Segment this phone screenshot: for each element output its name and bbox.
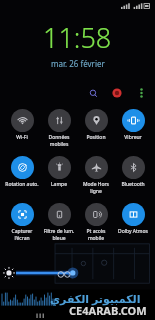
button[interactable]: Pt accès mobile: [78, 202, 114, 242]
staticText: Bluetooth: [115, 181, 151, 188]
button[interactable]: Dolby Atmos: [115, 202, 151, 236]
button[interactable]: Bluetooth: [115, 155, 151, 189]
button[interactable]: Lampe: [41, 155, 77, 189]
button[interactable]: Données mobiles: [41, 108, 77, 148]
button[interactable]: Position: [78, 108, 114, 142]
button[interactable]: Rotation auto.: [4, 155, 40, 189]
staticText: Vibreur: [115, 134, 151, 141]
staticText: Lampe: [41, 181, 77, 188]
button[interactable]: Mode Hors ligne: [78, 155, 114, 195]
staticText: Pt accès mobile: [78, 228, 114, 241]
staticText: Mode Hors ligne: [78, 181, 114, 194]
staticText: Capturer l'écran: [4, 228, 40, 241]
staticText: Filtre de lum. bleue: [41, 228, 77, 241]
button[interactable]: Power off: [109, 85, 125, 101]
staticText: الكمبيوتر الكفري: [50, 291, 141, 306]
staticText: CE4ARAB.COM: [69, 303, 147, 318]
staticText: 11:58: [43, 19, 112, 56]
button[interactable]: Wi-Fi: [4, 108, 40, 142]
button[interactable]: Filtre de lum. bleue: [41, 202, 77, 242]
button[interactable]: Search: [85, 85, 101, 101]
button[interactable]: Brightness: [0, 0, 155, 320]
staticText: Position: [78, 134, 114, 141]
staticText: Rotation auto.: [4, 181, 40, 188]
staticText: Données mobiles: [41, 134, 77, 147]
staticText: Wi-Fi: [4, 134, 40, 141]
button[interactable]: Capturer l'écran: [4, 202, 40, 242]
button[interactable]: Vibreur: [115, 108, 151, 142]
button[interactable]: More options: [133, 85, 149, 101]
staticText: Dolby Atmos: [115, 228, 151, 235]
staticText: mar. 26 février: [51, 58, 105, 69]
